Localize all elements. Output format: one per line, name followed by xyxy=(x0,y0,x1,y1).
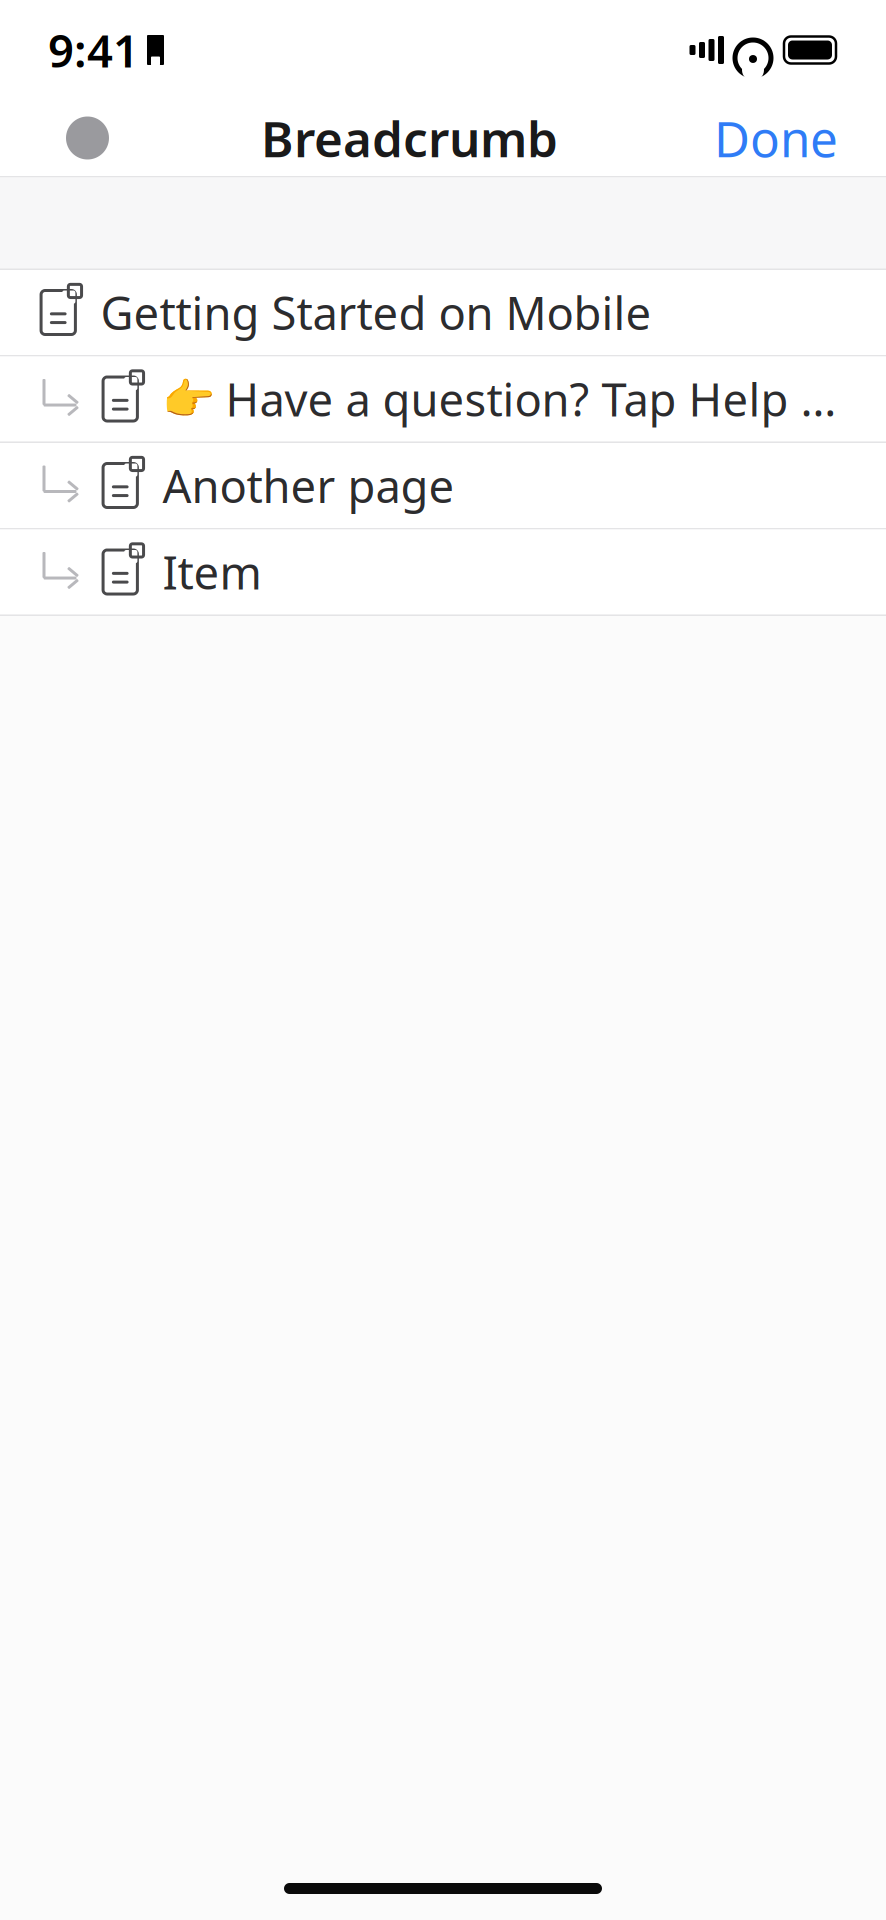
staticText: Getting Started on Mobile xyxy=(100,282,651,343)
staticText: 9:41 xyxy=(48,20,139,80)
staticText: Have a question? Tap Help & feed… xyxy=(225,369,866,429)
staticText: Breadcrumb xyxy=(261,105,558,171)
button[interactable]: Done xyxy=(688,91,864,185)
button[interactable]: Account xyxy=(44,102,131,173)
button[interactable]: Another page xyxy=(0,443,886,528)
staticText: Another page xyxy=(162,455,454,516)
staticText: 👉 xyxy=(162,375,215,423)
staticText: Done xyxy=(714,105,838,171)
button[interactable]: Getting Started on Mobile xyxy=(0,270,886,355)
button[interactable]: 👉 xyxy=(0,356,886,441)
staticText: Item xyxy=(162,542,261,602)
button[interactable]: Item xyxy=(0,529,886,614)
